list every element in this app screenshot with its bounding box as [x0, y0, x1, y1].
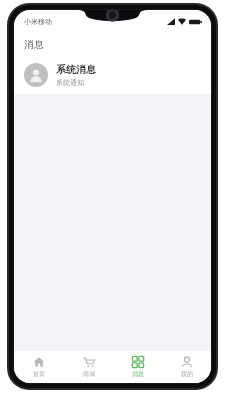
button[interactable]: 商城: [64, 351, 113, 383]
button[interactable]: 系统消息: [14, 56, 211, 94]
staticText: 系统通知: [56, 78, 84, 87]
staticText: 消息: [24, 38, 44, 51]
staticText: 消息: [132, 370, 144, 378]
staticText: 系统消息: [56, 63, 96, 76]
button[interactable]: 消息: [113, 351, 162, 383]
staticText: 首页: [33, 370, 45, 378]
staticText: 商城: [83, 370, 95, 378]
button[interactable]: 我的: [162, 351, 211, 383]
button[interactable]: 首页: [14, 351, 64, 383]
staticText: 小米移动: [24, 17, 52, 26]
staticText: 我的: [181, 370, 193, 378]
